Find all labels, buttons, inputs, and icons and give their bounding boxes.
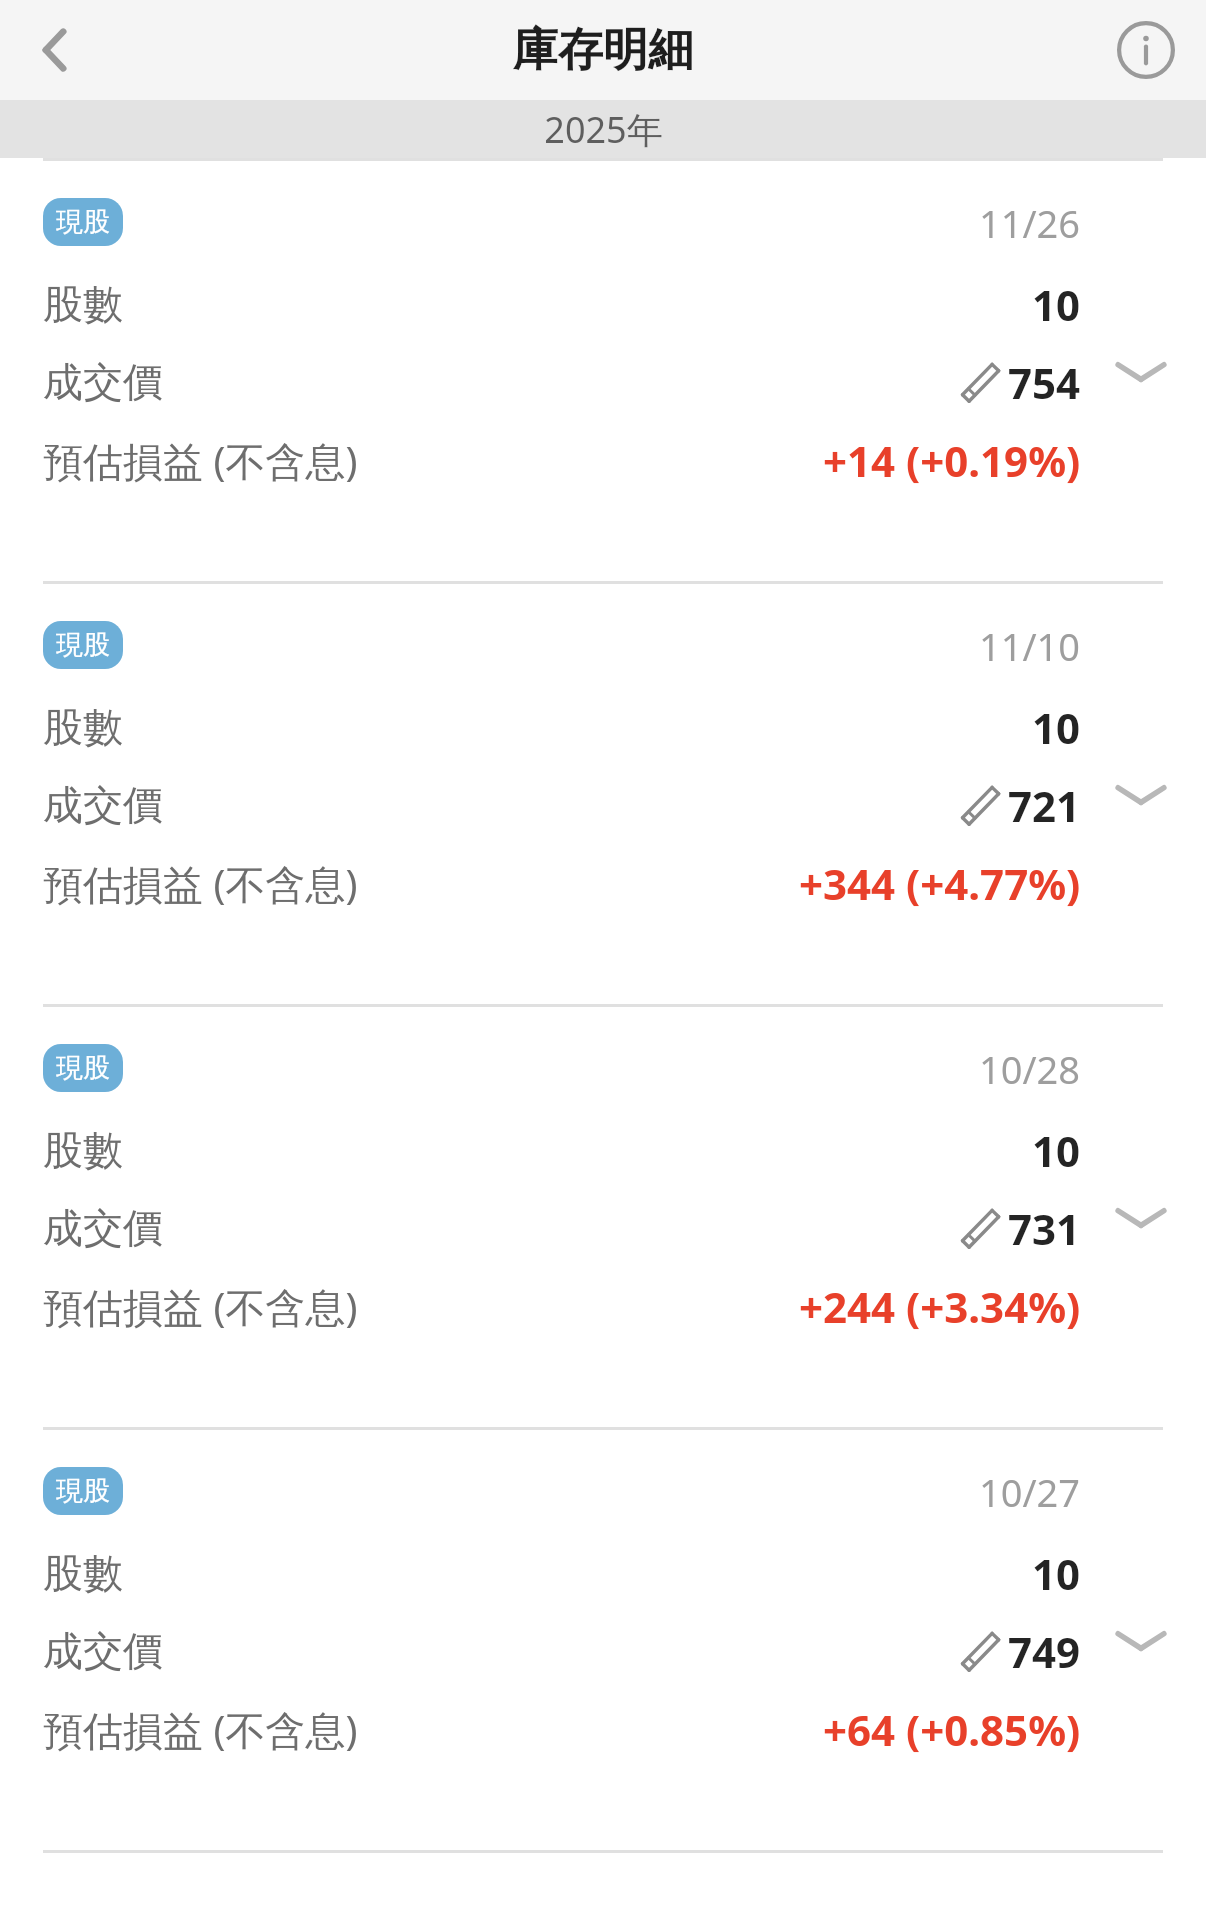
button[interactable]: Edit price <box>958 1205 1004 1251</box>
staticText: 731 <box>1008 1200 1081 1257</box>
staticText: 現股 <box>56 628 110 662</box>
button[interactable]: 現股 <box>0 1007 1206 1427</box>
staticText: 成交價 <box>43 780 163 830</box>
staticText: 11/26 <box>979 197 1081 247</box>
staticText: 749 <box>1008 1623 1081 1680</box>
staticText: 10/27 <box>979 1466 1081 1516</box>
staticText: 現股 <box>56 1051 110 1085</box>
staticText: 股數 <box>43 279 123 329</box>
button[interactable]: 現股 <box>0 1430 1206 1850</box>
button[interactable]: Back <box>0 0 110 100</box>
staticText: 預估損益 (不含息) <box>43 1279 358 1334</box>
staticText: 股數 <box>43 1125 123 1175</box>
button[interactable]: Expand details <box>1096 326 1186 416</box>
staticText: 股數 <box>43 702 123 752</box>
staticText: 預估損益 (不含息) <box>43 1702 358 1757</box>
button[interactable]: Expand details <box>1096 1595 1186 1685</box>
staticText: 成交價 <box>43 1626 163 1676</box>
staticText: 754 <box>1008 354 1081 411</box>
staticText: 現股 <box>56 205 110 239</box>
staticText: 股數 <box>43 1548 123 1598</box>
staticText: 10 <box>1032 276 1081 333</box>
staticText: 2025年 <box>544 105 663 154</box>
button[interactable]: Expand details <box>1096 749 1186 839</box>
staticText: 721 <box>1008 777 1081 834</box>
staticText: 10/28 <box>979 1043 1081 1093</box>
staticText: 10 <box>1032 1545 1081 1602</box>
staticText: +244 (+3.34%) <box>799 1278 1081 1335</box>
button[interactable]: Edit price <box>958 1628 1004 1674</box>
staticText: 庫存明細 <box>513 22 693 79</box>
button[interactable]: Edit price <box>958 782 1004 828</box>
staticText: 10 <box>1032 699 1081 756</box>
staticText: +64 (+0.85%) <box>823 1701 1081 1758</box>
staticText: 預估損益 (不含息) <box>43 856 358 911</box>
staticText: 10 <box>1032 1122 1081 1179</box>
staticText: 成交價 <box>43 357 163 407</box>
staticText: 11/10 <box>979 620 1081 670</box>
staticText: +344 (+4.77%) <box>799 855 1081 912</box>
button[interactable]: Edit price <box>958 359 1004 405</box>
button[interactable]: Information <box>1086 0 1206 100</box>
staticText: 現股 <box>56 1474 110 1508</box>
staticText: 成交價 <box>43 1203 163 1253</box>
staticText: 預估損益 (不含息) <box>43 433 358 488</box>
button[interactable]: 現股 <box>0 584 1206 1004</box>
button[interactable]: Expand details <box>1096 1172 1186 1262</box>
button[interactable]: 現股 <box>0 161 1206 581</box>
staticText: +14 (+0.19%) <box>823 432 1081 489</box>
